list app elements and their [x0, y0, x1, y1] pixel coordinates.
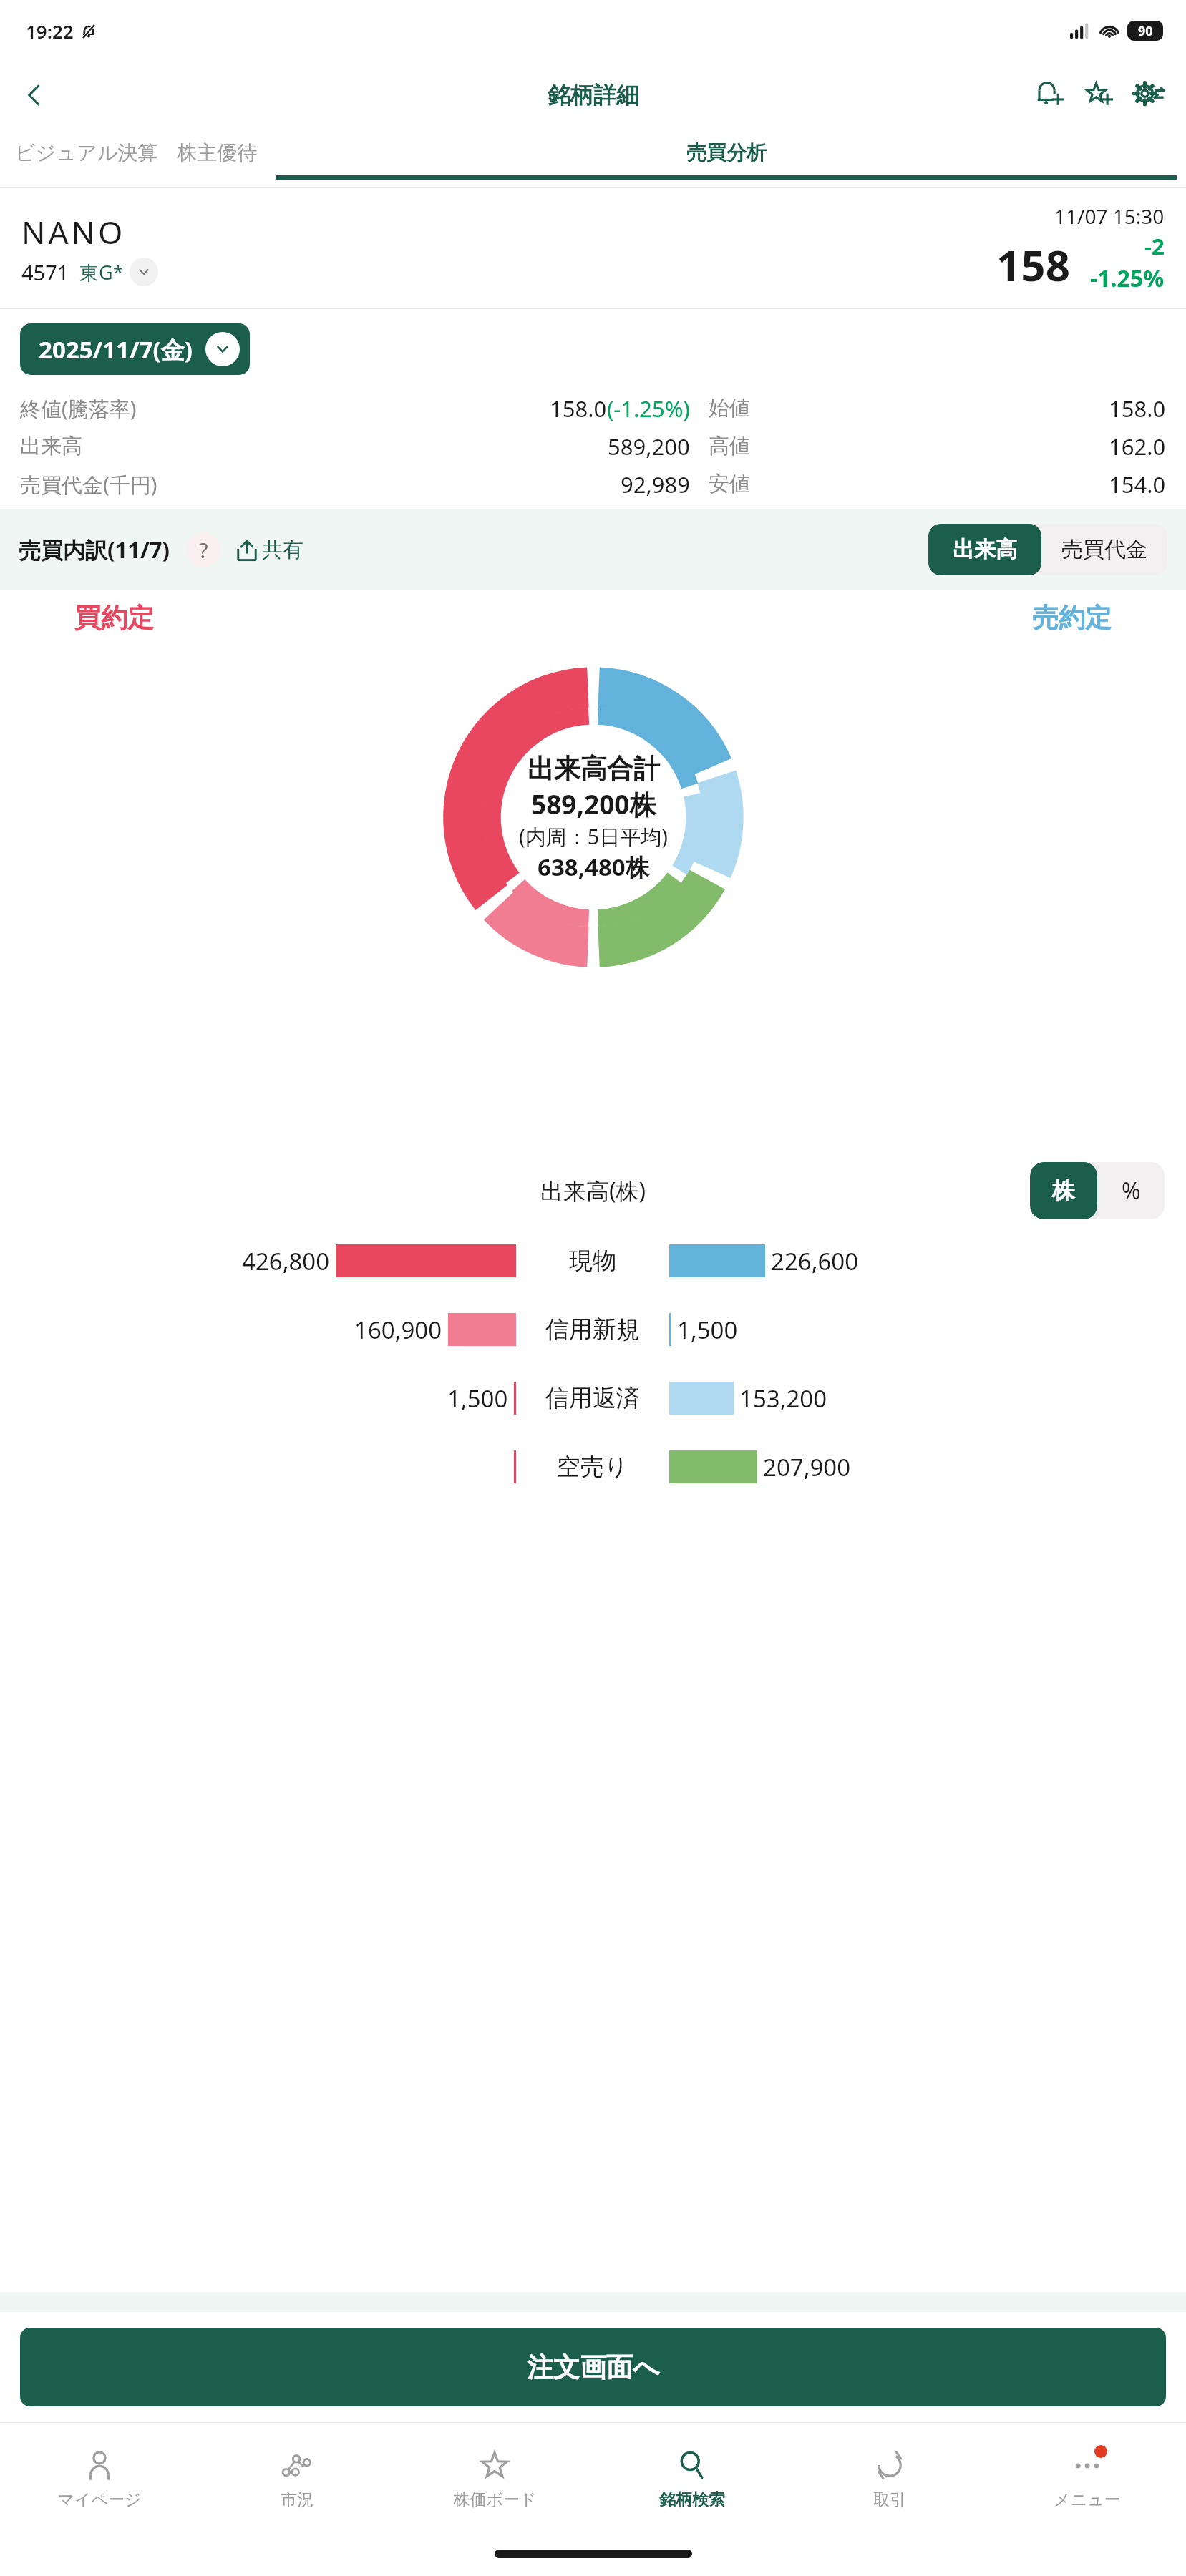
staticText: -2 [1144, 231, 1165, 261]
staticText: -1.25% [1090, 263, 1165, 294]
button[interactable]: 2025/11/7(金) [20, 323, 250, 375]
staticText: ビジュアル決算 [15, 140, 158, 165]
staticText: 売買内訳(11/7) [19, 535, 170, 565]
button[interactable]: Back [11, 72, 57, 118]
button[interactable]: メニュー [988, 2423, 1186, 2532]
staticText: メニュー [1054, 2489, 1121, 2510]
button[interactable]: Add alert [1027, 71, 1076, 119]
staticText: 信用新規 [545, 1314, 640, 1345]
button[interactable]: ビジュアル決算 [6, 129, 167, 175]
staticText: 安値 [709, 471, 750, 497]
button[interactable]: 売買分析 [266, 129, 1186, 180]
staticText: 4571 [21, 258, 69, 286]
staticText: 空売り [557, 1452, 628, 1482]
staticText: 638,480株 [538, 851, 649, 883]
button[interactable]: マイページ [0, 2423, 198, 2532]
staticText: 取引 [873, 2489, 906, 2510]
staticText: 19:22 [26, 19, 74, 44]
staticText: 158.0 [550, 394, 607, 424]
staticText: 出来高 [20, 433, 82, 459]
staticText: (-1.25%) [607, 394, 690, 424]
staticText: 1,500 [447, 1382, 508, 1415]
staticText: 株 [1052, 1176, 1075, 1205]
staticText: 158.0 [1109, 394, 1166, 424]
staticText: 160,900 [354, 1314, 442, 1346]
button[interactable]: 株 [1030, 1162, 1097, 1219]
staticText: (内周：5日平均) [519, 822, 668, 851]
staticText: 銘柄検索 [659, 2489, 725, 2510]
button[interactable]: More [130, 258, 158, 286]
staticText: 出来高合計 [528, 752, 660, 786]
staticText: 株主優待 [177, 140, 257, 165]
button[interactable]: 銘柄検索 [593, 2423, 791, 2532]
staticText: 162.0 [1109, 431, 1166, 462]
staticText: 売約定 [1032, 601, 1112, 635]
staticText: 共有 [262, 537, 303, 563]
staticText: 11/07 15:30 [1054, 203, 1165, 230]
staticText: 158 [996, 235, 1070, 294]
staticText: 426,800 [242, 1245, 330, 1277]
staticText: 始値 [709, 395, 750, 421]
staticText: NANO [21, 210, 126, 253]
button[interactable]: % [1097, 1162, 1165, 1219]
staticText: 終値(騰落率) [20, 394, 137, 423]
staticText: 売買分析 [686, 140, 767, 165]
button[interactable]: 株主優待 [167, 129, 266, 175]
staticText: 東G* [79, 259, 124, 286]
button[interactable]: Help [186, 532, 220, 567]
staticText: マイページ [57, 2489, 142, 2510]
staticText: % [1122, 1175, 1141, 1206]
button[interactable]: 注文画面へ [20, 2328, 1166, 2406]
staticText: 2025/11/7(金) [39, 333, 193, 366]
staticText: 売買代金(千円) [20, 470, 157, 499]
button[interactable]: 出来高 [928, 524, 1041, 575]
button[interactable]: 市況 [198, 2423, 396, 2532]
button[interactable]: 共有 [232, 534, 306, 566]
staticText: 株価ボード [453, 2489, 537, 2510]
staticText: 1,500 [677, 1314, 738, 1346]
staticText: 92,989 [621, 469, 690, 499]
staticText: 226,600 [771, 1245, 859, 1277]
staticText: 出来高(株) [540, 1175, 646, 1206]
staticText: 高値 [709, 433, 750, 459]
button[interactable]: 取引 [791, 2423, 988, 2532]
staticText: 90 [1138, 22, 1153, 40]
staticText: 売買代金 [1061, 536, 1147, 563]
staticText: 154.0 [1109, 469, 1166, 499]
staticText: 市況 [281, 2489, 313, 2510]
button[interactable]: Add to favorites [1076, 71, 1124, 119]
button[interactable]: 売買代金 [1041, 524, 1167, 575]
staticText: 現物 [569, 1246, 616, 1276]
staticText: 153,200 [739, 1382, 827, 1415]
staticText: 銘柄詳細 [548, 81, 639, 109]
staticText: 信用返済 [545, 1383, 640, 1413]
staticText: 207,900 [763, 1451, 851, 1483]
button[interactable]: 株価ボード [396, 2423, 593, 2532]
staticText: 出来高 [953, 536, 1017, 563]
staticText: 589,200株 [531, 786, 656, 822]
staticText: ? [199, 536, 208, 564]
staticText: 注文画面へ [527, 2351, 660, 2384]
staticText: 589,200 [608, 431, 690, 462]
staticText: 買約定 [74, 601, 154, 635]
button[interactable]: Settings [1124, 71, 1173, 119]
